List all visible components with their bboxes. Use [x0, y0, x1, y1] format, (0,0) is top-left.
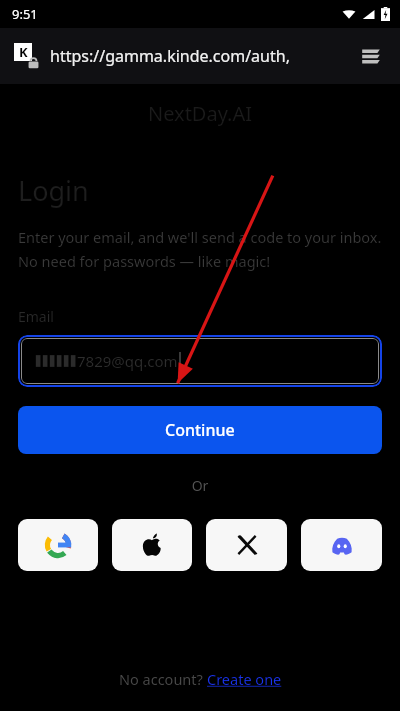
staticText: Create one [207, 669, 282, 689]
button[interactable]: Continue [18, 406, 382, 454]
staticText: K [19, 43, 28, 61]
staticText: Email [18, 307, 54, 326]
staticText: Enter your email, and we'll send a code … [18, 227, 382, 271]
staticText: Login [18, 172, 89, 209]
button[interactable]: 7829@qq.com [21, 338, 379, 384]
staticText: 9:51 [12, 5, 38, 23]
button[interactable]: Reader mode [356, 41, 386, 71]
staticText: No account? [119, 669, 207, 689]
staticText: Continue [165, 419, 235, 441]
button[interactable]: Sign in with Apple [112, 519, 192, 571]
staticText: https://gamma.kinde.com/auth, [50, 45, 350, 67]
staticText: Or [18, 476, 382, 495]
button[interactable]: Sign in with Google [18, 519, 98, 571]
button[interactable]: Sign in with Discord [301, 519, 382, 571]
button[interactable]: Sign in with X [206, 519, 287, 571]
button[interactable]: Create one [207, 669, 282, 689]
staticText: 7829@qq.com [77, 351, 178, 371]
staticText: NextDay.AI [0, 100, 400, 127]
